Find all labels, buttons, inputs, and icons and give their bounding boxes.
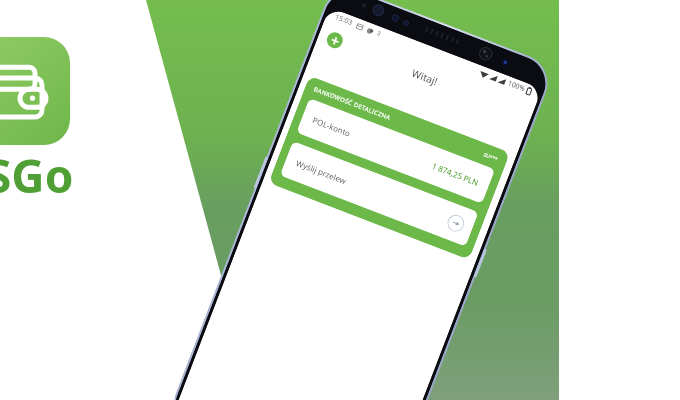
staticText: BANKOWOŚĆ DETALICZNA (312, 85, 392, 122)
staticText: Wyślij przelew (295, 157, 348, 186)
staticText: 1 874,25 PLN (431, 160, 480, 188)
staticText: 100% (506, 78, 527, 94)
staticText: SGo (0, 144, 74, 207)
staticText: Witaj! (410, 66, 440, 88)
staticText: POL-konto (311, 114, 352, 139)
staticText: 3 (376, 29, 382, 38)
button[interactable]: POL-konto (296, 98, 495, 204)
staticText: SU*** (482, 151, 499, 163)
button[interactable]: Add (324, 30, 345, 51)
button[interactable]: Wyślij przelew (280, 141, 479, 247)
staticText: 15:03 (333, 12, 354, 28)
